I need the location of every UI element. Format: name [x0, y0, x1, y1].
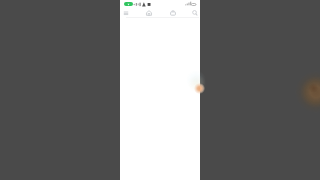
button[interactable]: Search [190, 9, 199, 17]
button[interactable]: Account [121, 9, 130, 17]
button[interactable]: Cart [168, 9, 177, 17]
button[interactable]: Home [144, 9, 153, 17]
